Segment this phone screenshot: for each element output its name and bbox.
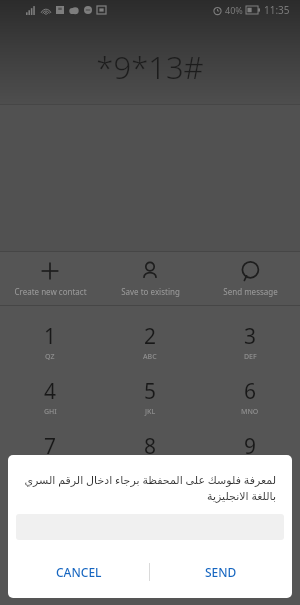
button[interactable]: 6 <box>200 369 300 424</box>
button[interactable]: 3 <box>200 314 300 369</box>
button[interactable]: 0 <box>100 479 200 534</box>
button[interactable]: Create new contact <box>0 252 100 305</box>
staticText: 9 <box>244 432 257 461</box>
staticText: JKL <box>145 407 156 417</box>
staticText: GHI <box>44 407 57 417</box>
button[interactable]: 7 <box>0 424 100 479</box>
staticText: Save to existing <box>121 286 180 297</box>
staticText: DEF <box>244 352 257 362</box>
staticText: 2 <box>144 322 157 351</box>
staticText: *9*13# <box>0 46 300 88</box>
staticText: 11:35 <box>264 3 290 17</box>
button[interactable]: 1 <box>0 314 100 369</box>
staticText: # <box>243 492 257 521</box>
button[interactable]: CANCEL <box>8 550 149 594</box>
button[interactable]: 5 <box>100 369 200 424</box>
staticText: 0 <box>144 487 157 516</box>
staticText: CANCEL <box>56 564 102 580</box>
button[interactable]: * <box>0 479 100 534</box>
button[interactable]: 8 <box>100 424 200 479</box>
staticText: QZ <box>45 352 55 362</box>
staticText: 3 <box>244 322 257 351</box>
button[interactable]: Send message <box>200 252 300 305</box>
staticText: SEND <box>205 564 237 580</box>
button[interactable]: SEND <box>150 550 292 594</box>
staticText: 1 <box>44 322 57 351</box>
staticText: * <box>44 492 56 521</box>
button[interactable]: # <box>200 479 300 534</box>
staticText: 4 <box>44 377 57 406</box>
staticText: 8 <box>144 432 157 461</box>
staticText: Send message <box>223 286 278 297</box>
staticText: 6 <box>244 377 257 406</box>
button[interactable]: 9 <box>200 424 300 479</box>
staticText: 5 <box>144 377 157 406</box>
staticText: ABC <box>143 352 157 362</box>
button[interactable]: Save to existing <box>100 252 200 305</box>
staticText: لمعرفة فلوسك على المحفظة برجاء ادخال الر… <box>24 472 276 503</box>
staticText: 7 <box>44 432 57 461</box>
staticText: MNO <box>241 407 259 417</box>
staticText: 40% <box>225 4 243 16</box>
button[interactable]: 2 <box>100 314 200 369</box>
button[interactable]: 4 <box>0 369 100 424</box>
staticText: Create new contact <box>14 286 87 297</box>
